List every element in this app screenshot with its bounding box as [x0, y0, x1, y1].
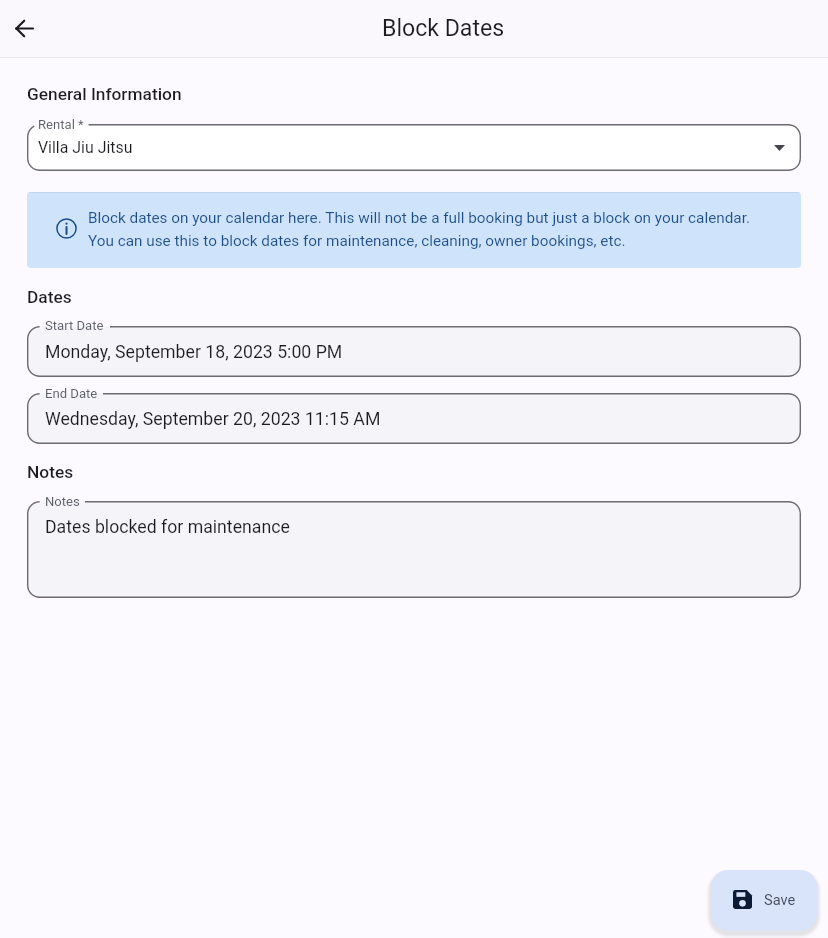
button[interactable]: Back	[0, 4, 48, 52]
staticText: Block Dates	[382, 15, 505, 42]
staticText: Monday, September 18, 2023 5:00 PM	[45, 342, 343, 363]
staticText: Save	[764, 891, 796, 908]
button[interactable]: Dates blocked for maintenance	[27, 501, 801, 598]
staticText: Notes	[45, 494, 80, 509]
button[interactable]: Monday, September 18, 2023 5:00 PM	[27, 326, 801, 377]
staticText: Villa Jiu Jitsu	[38, 138, 133, 157]
staticText: Rental *	[38, 117, 84, 132]
staticText: End Date	[45, 386, 98, 401]
staticText: Wednesday, September 20, 2023 11:15 AM	[45, 409, 381, 430]
button[interactable]: Wednesday, September 20, 2023 11:15 AM	[27, 393, 801, 444]
staticText: Notes	[27, 462, 74, 482]
staticText: Dates	[27, 287, 72, 307]
staticText: Dates blocked for maintenance	[45, 517, 290, 538]
staticText: Block dates on your calendar here. This …	[88, 209, 750, 250]
staticText: General Information	[27, 84, 182, 104]
staticText: Start Date	[45, 318, 104, 333]
button[interactable]: Villa Jiu Jitsu	[27, 124, 801, 171]
button[interactable]: Save	[711, 870, 817, 931]
